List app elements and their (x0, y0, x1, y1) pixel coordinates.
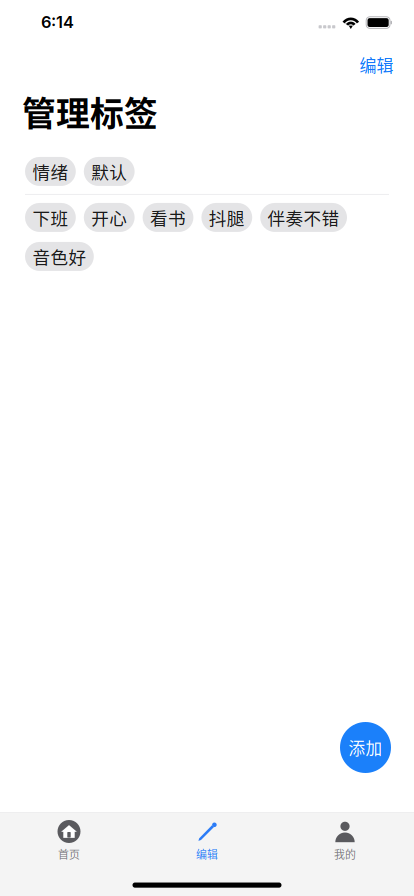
staticText: 首页 (58, 846, 80, 862)
button[interactable]: 编辑 (138, 813, 276, 863)
staticText: 我的 (334, 846, 356, 862)
button[interactable]: 编辑 (343, 44, 414, 85)
button[interactable]: 我的 (276, 813, 414, 863)
staticText: 开心 (91, 205, 127, 230)
button[interactable]: 默认 (84, 157, 135, 186)
button[interactable]: 开心 (84, 203, 135, 232)
staticText: 编辑 (196, 846, 218, 862)
staticText: 音色好 (32, 244, 86, 269)
staticText: 管理标签 (22, 87, 158, 136)
staticText: 下班 (32, 205, 68, 230)
button[interactable]: 抖腿 (201, 203, 252, 232)
button[interactable]: 看书 (143, 203, 193, 232)
staticText: 6:14 (41, 12, 74, 32)
staticText: 看书 (150, 205, 186, 230)
button[interactable]: 添加 (340, 722, 391, 773)
staticText: 添加 (348, 735, 382, 759)
staticText: 编辑 (359, 52, 393, 77)
staticText: 情绪 (32, 159, 68, 184)
button[interactable]: 首页 (0, 813, 138, 863)
staticText: 伴奏不错 (268, 205, 340, 230)
staticText: 抖腿 (209, 205, 245, 230)
button[interactable]: 下班 (25, 203, 76, 232)
button[interactable]: 音色好 (25, 242, 94, 271)
staticText: 默认 (91, 159, 127, 184)
button[interactable]: 伴奏不错 (260, 203, 347, 232)
button[interactable]: 情绪 (25, 157, 76, 186)
